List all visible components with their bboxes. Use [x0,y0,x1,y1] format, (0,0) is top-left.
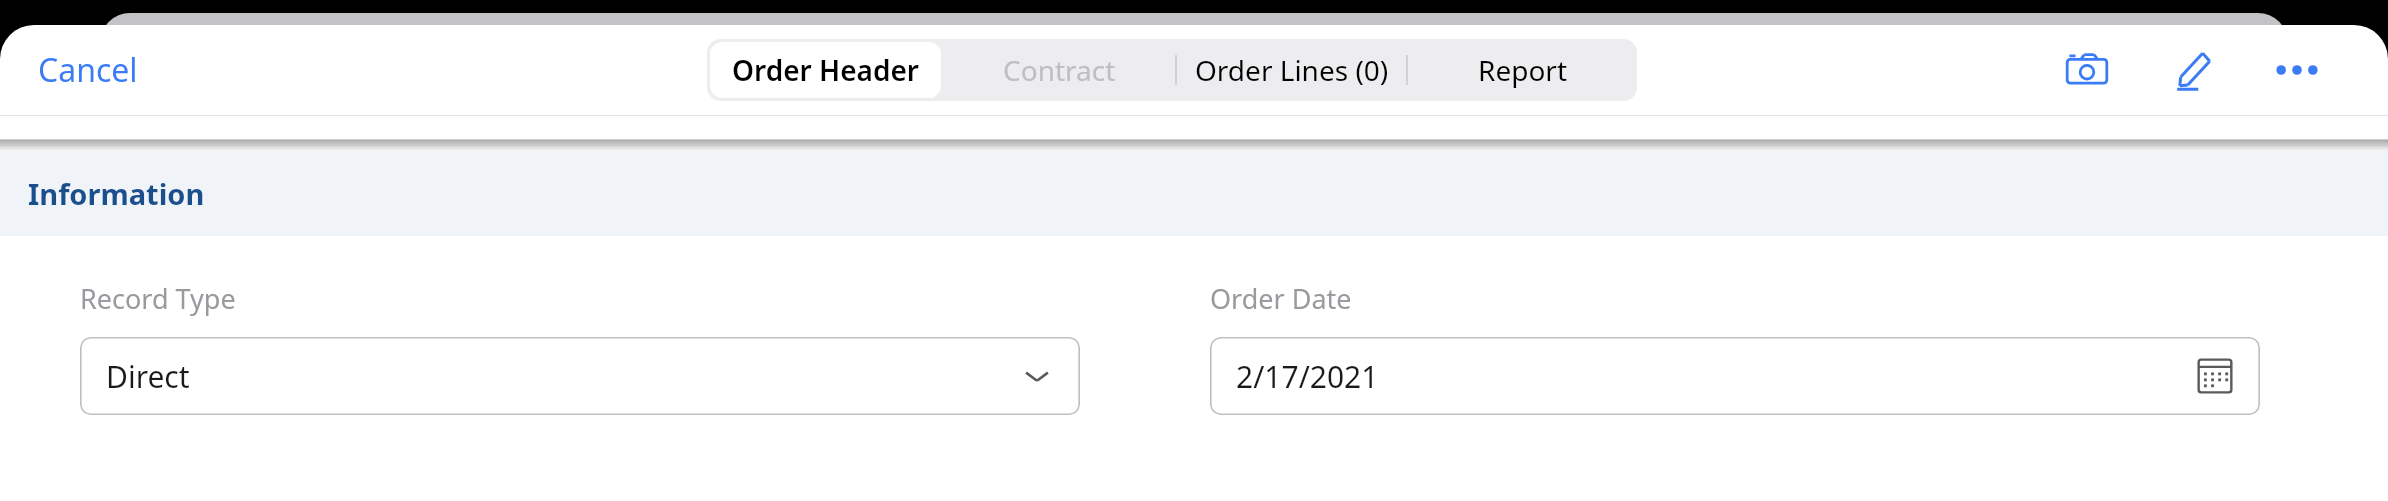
button[interactable]: Take photo [2058,41,2116,99]
staticText: Information [28,174,205,213]
button[interactable]: Order Header [707,39,944,101]
button[interactable]: Cancel [14,38,162,102]
button[interactable]: Information [0,151,2388,236]
staticText: Cancel [38,48,138,92]
staticText: Order Lines (0) [1195,51,1389,89]
button[interactable]: Report [1408,39,1637,101]
staticText: Record Type [80,280,236,317]
button[interactable]: More options [2268,41,2326,99]
staticText: Report [1478,51,1568,89]
button[interactable]: Direct [80,337,1080,415]
staticText: Direct [106,356,190,397]
button[interactable]: Order Lines (0) [1177,39,1406,101]
staticText: Order Header [732,51,919,89]
button[interactable]: Edit [2164,41,2222,99]
button[interactable]: 2/17/2021 [1210,337,2260,415]
staticText: Order Date [1210,280,1352,317]
staticText: 2/17/2021 [1236,356,1379,397]
staticText: Contract [1003,51,1116,89]
button[interactable]: Contract [944,39,1175,101]
